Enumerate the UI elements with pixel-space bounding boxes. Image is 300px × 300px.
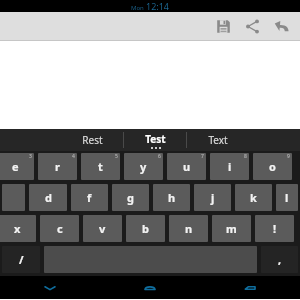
button[interactable]: Home <box>100 276 200 299</box>
button[interactable]: l <box>276 184 298 211</box>
staticText: l <box>285 190 289 205</box>
staticText: Text <box>208 133 228 147</box>
button[interactable]: Text <box>187 129 249 151</box>
staticText: e <box>12 159 19 174</box>
button[interactable]: m <box>212 215 251 242</box>
button[interactable]: g <box>112 184 149 211</box>
staticText: o <box>269 159 276 174</box>
button[interactable]: c <box>40 215 79 242</box>
button[interactable]: y <box>124 153 163 180</box>
staticText: 6 <box>158 153 161 160</box>
staticText: m <box>226 221 237 236</box>
button[interactable]: , <box>261 246 298 273</box>
button[interactable]: e <box>0 153 34 180</box>
staticText: Mon <box>131 4 146 12</box>
button[interactable]: Share <box>238 12 267 41</box>
staticText: b <box>142 221 149 236</box>
staticText: r <box>55 159 60 174</box>
staticText: n <box>185 221 193 236</box>
staticText: u <box>183 159 191 174</box>
button[interactable]: n <box>169 215 208 242</box>
staticText: Test <box>145 132 166 146</box>
staticText: x <box>14 221 21 236</box>
staticText: v <box>99 221 106 236</box>
button[interactable]: b <box>126 215 165 242</box>
staticText: 4 <box>72 153 75 160</box>
staticText: k <box>250 190 257 205</box>
staticText: y <box>140 159 147 174</box>
button[interactable]: k <box>235 184 272 211</box>
staticText: 5 <box>115 153 118 160</box>
button[interactable]: x <box>0 215 36 242</box>
staticText: 3 <box>29 153 32 160</box>
staticText: c <box>57 221 63 236</box>
button[interactable]: f <box>71 184 108 211</box>
staticText: d <box>45 190 52 205</box>
staticText: i <box>228 159 232 174</box>
button[interactable]: v <box>83 215 122 242</box>
button[interactable]: Save <box>209 12 238 41</box>
staticText: 12:14 <box>146 0 170 12</box>
staticText: j <box>211 190 215 205</box>
staticText: h <box>168 190 176 205</box>
button[interactable]: ! <box>255 215 294 242</box>
button[interactable]: Recents <box>200 276 300 299</box>
staticText: Rest <box>82 133 103 147</box>
staticText: f <box>87 190 92 205</box>
button[interactable]: r <box>38 153 77 180</box>
staticText: 8 <box>244 153 247 160</box>
button[interactable]: / <box>2 246 40 273</box>
staticText: 7 <box>201 153 204 160</box>
staticText: / <box>19 252 24 267</box>
button[interactable]: Test <box>124 129 186 151</box>
staticText: , <box>278 252 282 267</box>
button[interactable]: o <box>253 153 292 180</box>
staticText: t <box>98 159 103 174</box>
button[interactable]: t <box>81 153 120 180</box>
button[interactable]: d <box>29 184 67 211</box>
button[interactable]: Undo <box>267 12 296 41</box>
button[interactable]: j <box>194 184 231 211</box>
staticText: 9 <box>287 153 290 160</box>
button[interactable]: h <box>153 184 190 211</box>
button[interactable]: Rest <box>61 129 123 151</box>
staticText: g <box>127 190 134 205</box>
button[interactable]: u <box>167 153 206 180</box>
button[interactable]: i <box>210 153 249 180</box>
staticText: ! <box>273 221 277 236</box>
button[interactable]: Hide keyboard <box>0 276 100 299</box>
